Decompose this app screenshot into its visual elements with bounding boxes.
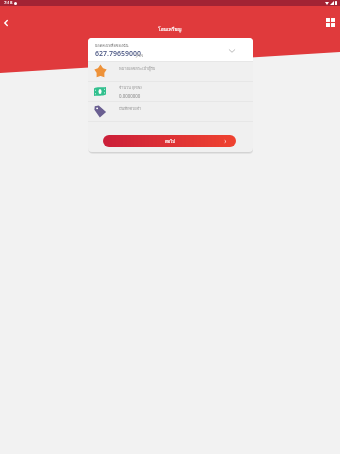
button[interactable]: หมายเลขกระเป๋าผู้รับ bbox=[88, 61, 253, 81]
staticText: จำนวน (JFIN) bbox=[119, 85, 142, 91]
staticText: 627.79659000 bbox=[95, 49, 141, 59]
button[interactable]: Expand balance bbox=[225, 44, 239, 58]
staticText: โอนเหรียญ bbox=[158, 25, 182, 33]
staticText: ต่อไป bbox=[165, 138, 175, 145]
staticText: JFIN bbox=[136, 53, 144, 58]
staticText: ยอดคงเหลือของฉัน bbox=[95, 42, 129, 48]
staticText: 7:18 bbox=[4, 0, 13, 6]
staticText: 0.0000000 bbox=[119, 93, 141, 99]
staticText: บันทึกช่วยจำ bbox=[119, 105, 142, 111]
button[interactable]: ต่อไป bbox=[103, 135, 236, 147]
button[interactable]: Scan QR code bbox=[321, 13, 340, 32]
staticText: หมายเลขกระเป๋าผู้รับ bbox=[119, 65, 156, 71]
button[interactable]: บันทึกช่วยจำ bbox=[88, 101, 253, 121]
button[interactable]: จำนวน (JFIN) bbox=[88, 81, 253, 101]
button[interactable]: Back bbox=[0, 13, 11, 32]
